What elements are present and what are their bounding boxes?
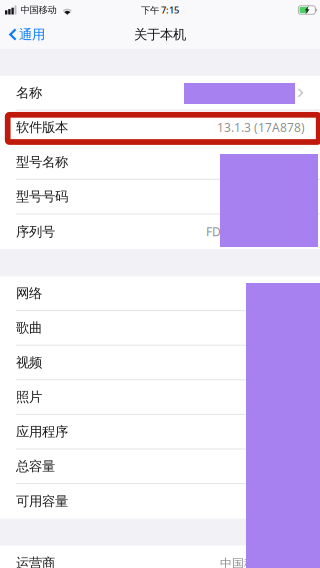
staticText: FD4XXXXXXXXXXX [206,224,305,240]
button[interactable]: 歌曲 [0,311,320,346]
button[interactable]: 名称 [0,76,320,111]
button[interactable]: 运营商 [0,546,320,568]
button[interactable]: 照片 [0,380,320,415]
button[interactable]: 型号号码 [0,180,320,214]
staticText: 总容量 [16,458,55,474]
button[interactable]: 应用程序 [0,415,320,449]
button[interactable]: 可用容量 [0,484,320,519]
staticText: 名称 [16,85,42,101]
staticText: 序列号 [16,223,55,240]
button[interactable]: 网络 [0,276,320,311]
button[interactable]: 通用 [0,21,51,48]
staticText: 运营商 [16,555,55,568]
staticText: 歌曲 [16,320,42,336]
staticText: 型号名称 [16,154,68,170]
staticText: 通用 [19,26,45,43]
staticText: 中国移动 38.1.1 [220,555,305,568]
staticText: 应用程序 [16,423,68,440]
staticText: 中国移动 [20,4,56,16]
button[interactable]: 序列号 [0,214,320,249]
button[interactable]: 视频 [0,346,320,380]
button[interactable]: 总容量 [0,449,320,484]
staticText: 软件版本 [16,119,68,136]
staticText: 13.1.3 (17A878) [217,119,305,135]
staticText: 型号号码 [16,188,68,205]
button[interactable]: 软件版本 [0,111,320,145]
button[interactable]: 型号名称 [0,145,320,180]
staticText: 视频 [16,354,42,371]
staticText: 网络 [16,285,42,301]
staticText: 可用容量 [16,493,68,510]
staticText: 照片 [16,389,42,405]
staticText: 关于本机 [134,26,186,43]
staticText: 下午 7:15 [141,4,179,16]
